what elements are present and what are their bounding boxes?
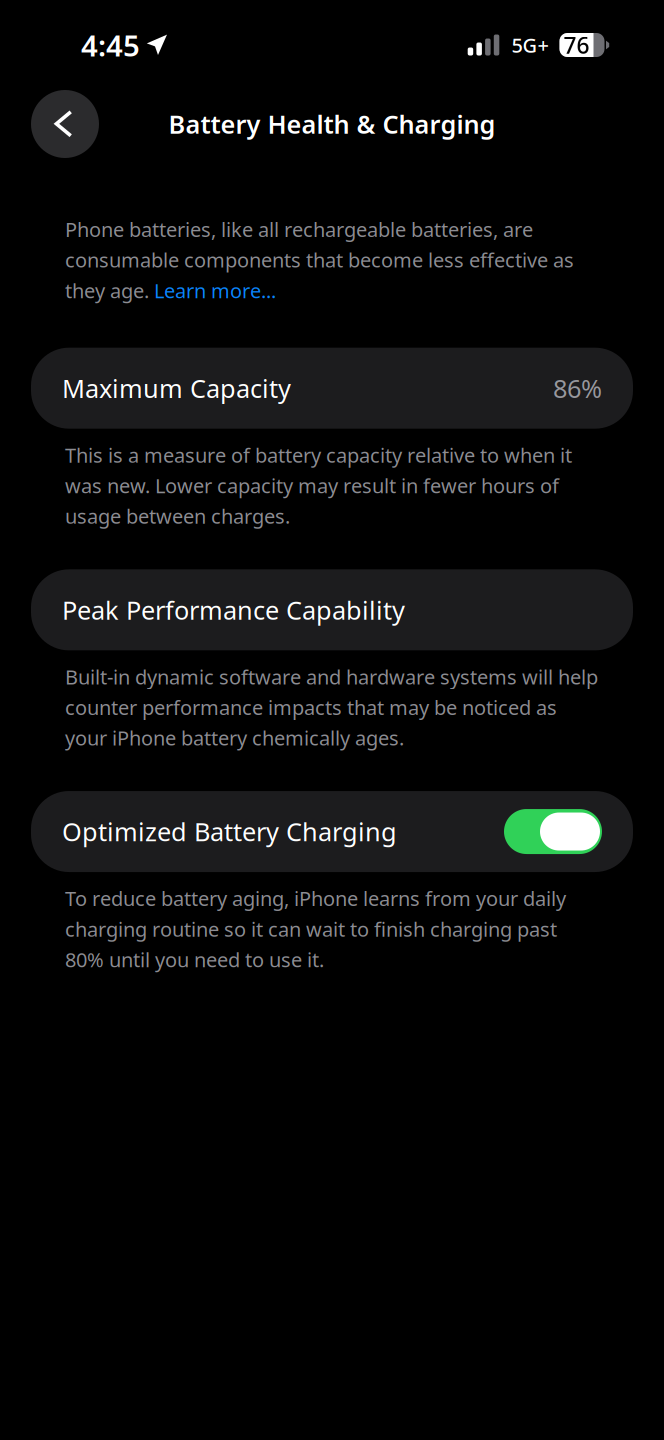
button[interactable]: Maximum Capacity	[0, 348, 664, 429]
staticText: Maximum Capacity	[62, 371, 291, 405]
staticText: 5G+	[511, 32, 548, 58]
staticText: Phone batteries, like all rechargeable b…	[65, 216, 574, 304]
staticText: 4:45	[81, 25, 140, 64]
staticText: Built-in dynamic software and hardware s…	[65, 663, 598, 751]
staticText: 76	[563, 30, 589, 60]
staticText: This is a measure of battery capacity re…	[65, 442, 572, 529]
staticText: Peak Performance Capability	[62, 593, 405, 627]
button[interactable]: Back	[31, 90, 99, 158]
button[interactable]: Peak Performance Capability	[0, 569, 664, 650]
staticText: Battery Health & Charging	[168, 107, 495, 141]
staticText: 86%	[553, 371, 602, 405]
staticText: To reduce battery aging, iPhone learns f…	[65, 885, 566, 973]
button[interactable]: Optimized Battery Charging	[0, 791, 664, 872]
staticText: Optimized Battery Charging	[62, 815, 397, 848]
